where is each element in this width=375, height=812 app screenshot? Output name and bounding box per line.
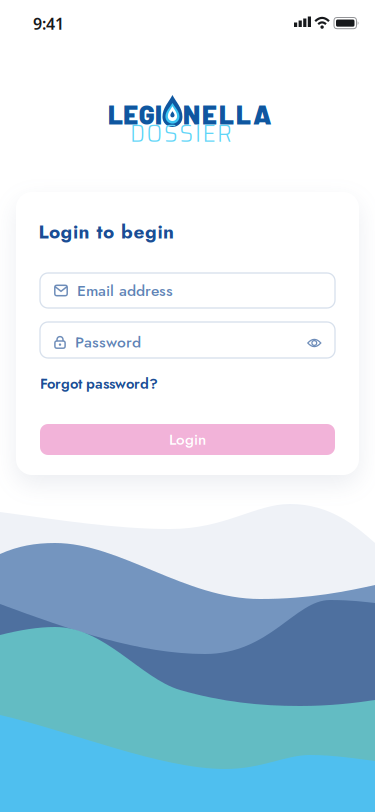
- button[interactable]: Show password: [307, 338, 322, 349]
- staticText: LEGI: [108, 98, 162, 130]
- staticText: Login: [169, 428, 206, 450]
- staticText: NELLA: [183, 98, 272, 130]
- button[interactable]: Password: [40, 322, 335, 358]
- staticText: Login to begin: [38, 218, 174, 246]
- staticText: Email address: [77, 279, 173, 302]
- staticText: Forgot password?: [40, 373, 158, 394]
- staticText: 9:41: [33, 13, 64, 34]
- button[interactable]: Forgot password?: [40, 373, 158, 394]
- button[interactable]: Email address: [40, 273, 335, 308]
- staticText: Password: [75, 331, 141, 353]
- staticText: DOSSIER: [130, 113, 232, 153]
- button[interactable]: Login: [40, 424, 335, 455]
